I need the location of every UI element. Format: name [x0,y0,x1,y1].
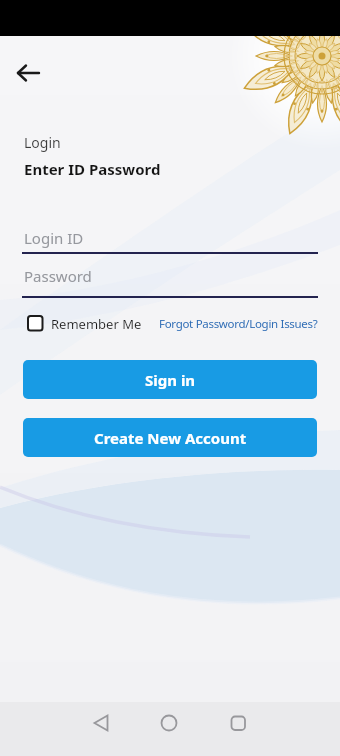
button[interactable]: Sign in [23,360,317,399]
button[interactable]: Remember Me [27,315,147,333]
staticText: Remember Me [51,315,142,333]
button[interactable] [85,707,117,747]
staticText: Create New Account [94,428,247,448]
button[interactable] [153,707,185,747]
staticText: Password [24,266,92,286]
staticText: Login [24,133,61,152]
staticText: Forgot Password/Login Issues? [159,316,318,332]
staticText: Sign in [145,370,196,390]
staticText: Login ID [24,228,84,248]
button[interactable]: Create New Account [23,418,317,457]
button[interactable]: Forgot Password/Login Issues? [159,316,318,332]
button[interactable]: Password [22,268,318,298]
button[interactable] [222,707,254,747]
staticText: Enter ID Password [24,159,161,179]
button[interactable]: Login ID [22,224,318,254]
button[interactable] [10,58,50,88]
